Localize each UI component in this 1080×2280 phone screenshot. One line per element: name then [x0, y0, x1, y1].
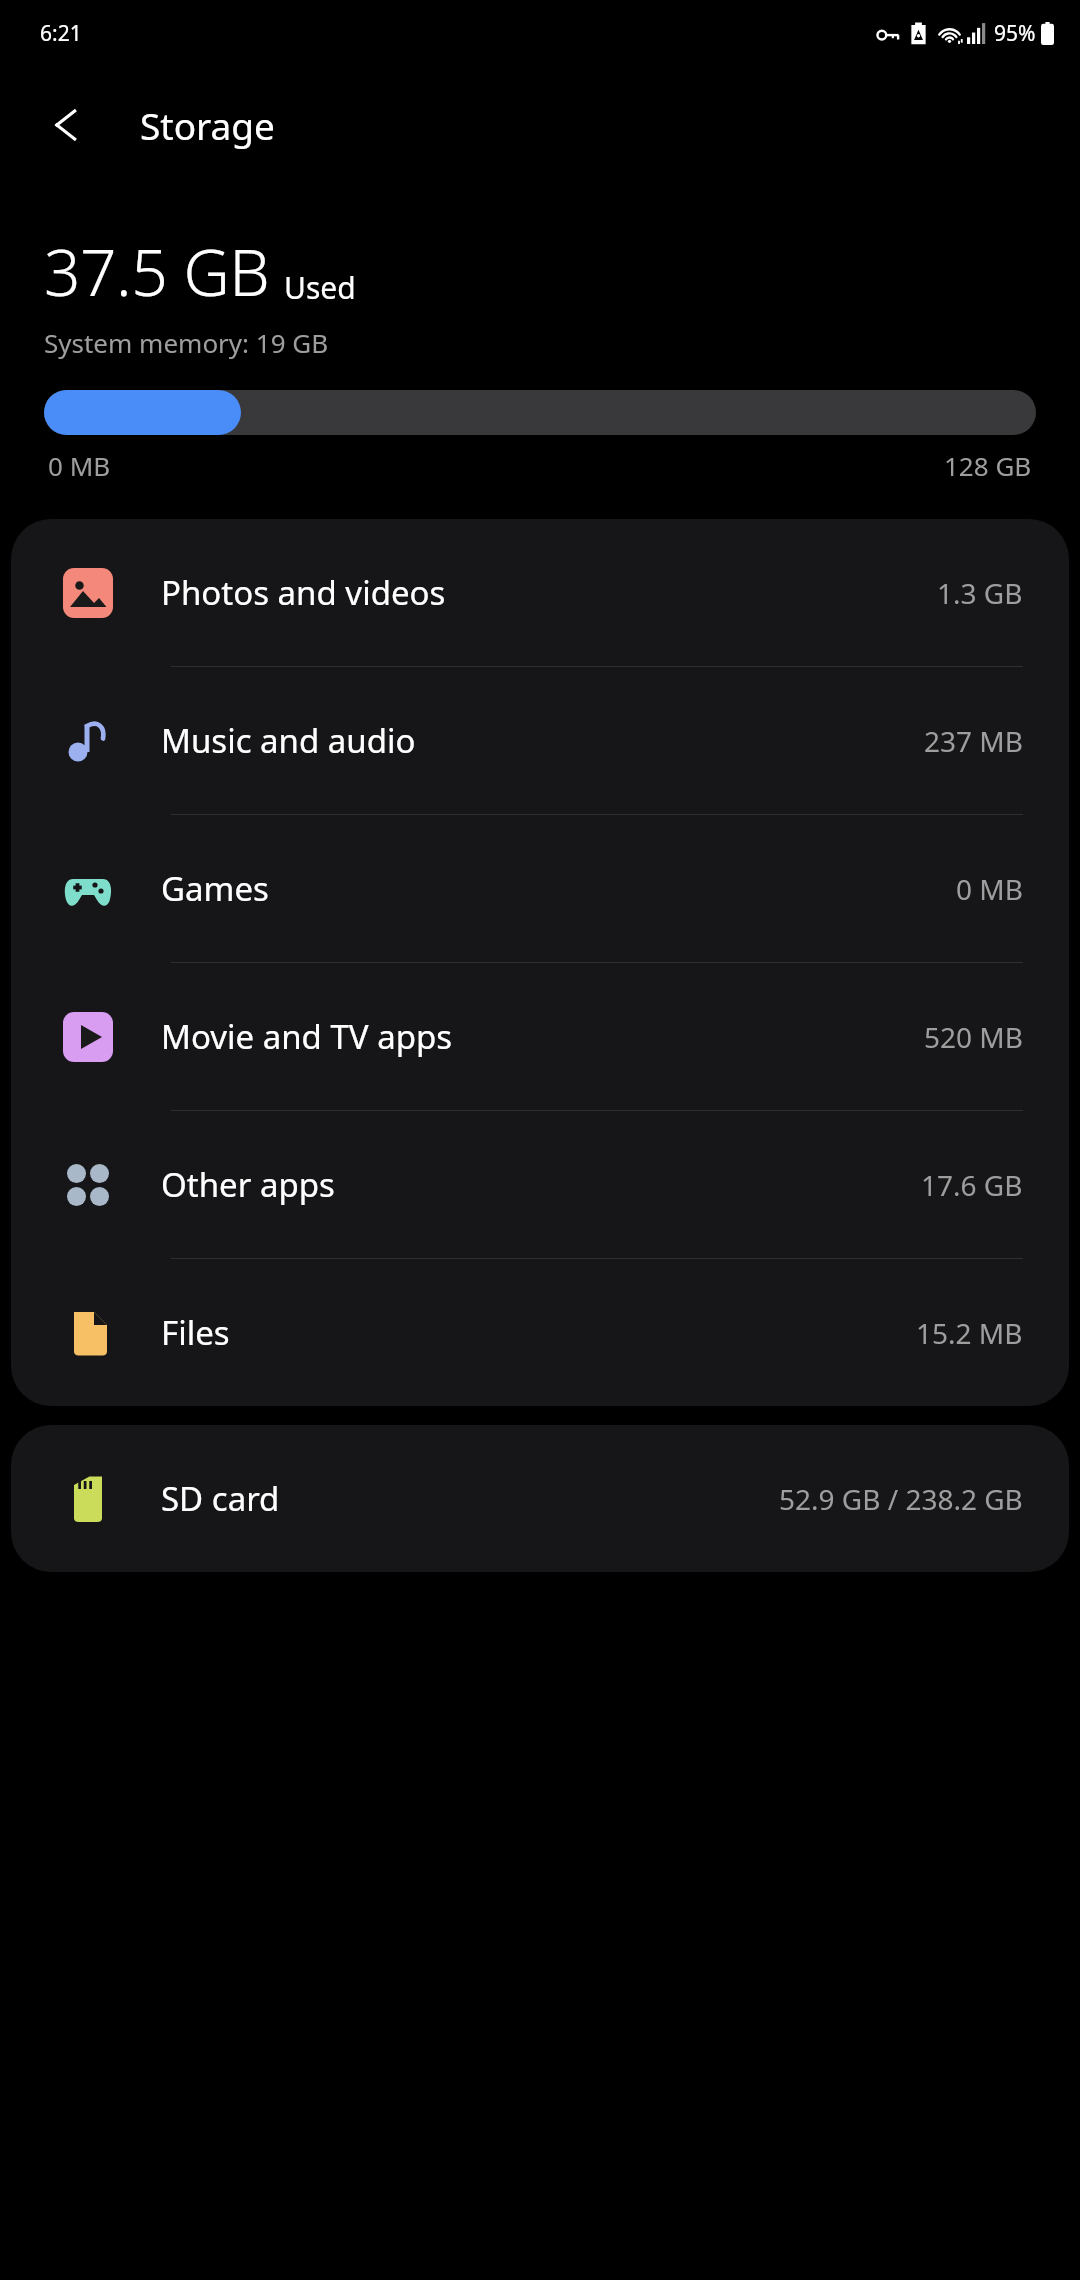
staticText: SD card [161, 1476, 779, 1521]
button[interactable]: Files [11, 1259, 1069, 1406]
button[interactable]: Games [11, 815, 1069, 962]
staticText: System memory: 19 GB [44, 325, 329, 360]
staticText: 6:21 [40, 19, 82, 48]
staticText: 17.6 GB [921, 1166, 1023, 1204]
staticText: 1.3 GB [937, 574, 1023, 612]
staticText: 37.5 GB [44, 228, 270, 315]
staticText: Files [161, 1310, 916, 1355]
staticText: Music and audio [161, 718, 924, 763]
staticText: 15.2 MB [916, 1314, 1023, 1352]
button[interactable]: Photos and videos [11, 519, 1069, 666]
staticText: Games [161, 866, 956, 911]
staticText: 52.9 GB / 238.2 GB [779, 1480, 1023, 1518]
staticText: 0 MB [48, 448, 111, 483]
staticText: 520 MB [924, 1018, 1023, 1056]
staticText: 0 MB [956, 870, 1023, 908]
staticText: Other apps [161, 1162, 921, 1207]
button[interactable]: SD card [11, 1425, 1069, 1572]
staticText: Used [284, 267, 356, 308]
staticText: Photos and videos [161, 570, 937, 615]
button[interactable]: Music and audio [11, 667, 1069, 814]
staticText: 95% [994, 19, 1036, 48]
staticText: Storage [140, 100, 275, 150]
staticText: 128 GB [944, 448, 1032, 483]
button[interactable]: Movie and TV apps [11, 963, 1069, 1110]
staticText: Movie and TV apps [161, 1014, 924, 1059]
button[interactable]: Other apps [11, 1111, 1069, 1258]
staticText: 237 MB [924, 722, 1023, 760]
button[interactable]: Back [40, 97, 96, 153]
